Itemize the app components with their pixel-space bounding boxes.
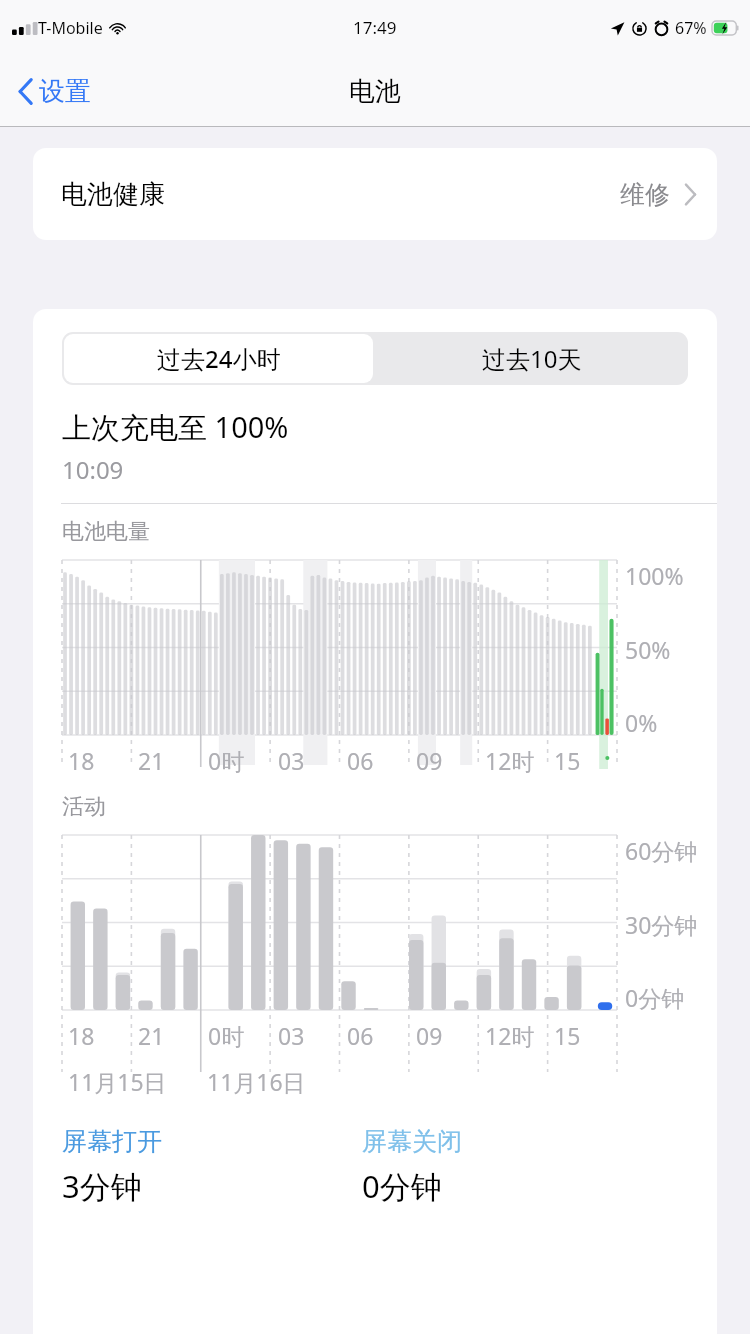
- button[interactable]: 电池健康: [33, 148, 717, 240]
- staticText: 0时: [208, 745, 245, 776]
- button[interactable]: 设置: [12, 69, 97, 114]
- staticText: 21: [138, 745, 165, 776]
- staticText: 0时: [208, 1020, 245, 1051]
- staticText: T-Mobile: [38, 17, 103, 39]
- staticText: 电池健康: [61, 178, 165, 211]
- button[interactable]: 过去24小时: [64, 334, 373, 383]
- staticText: 屏幕打开: [62, 1126, 162, 1157]
- staticText: 60分钟: [625, 835, 698, 863]
- staticText: 21: [138, 1020, 165, 1051]
- staticText: 3分钟: [62, 1165, 142, 1207]
- staticText: 活动: [62, 793, 106, 821]
- staticText: 上次充电至 100%: [62, 407, 289, 447]
- staticText: 0分钟: [625, 982, 685, 1010]
- staticText: 03: [278, 745, 305, 776]
- staticText: 18: [68, 745, 95, 776]
- staticText: 12时: [485, 1020, 535, 1051]
- staticText: 11月15日: [68, 1066, 167, 1096]
- staticText: 15: [554, 1020, 581, 1051]
- staticText: 过去24小时: [157, 342, 281, 375]
- staticText: 30分钟: [625, 909, 698, 937]
- staticText: 10:09: [62, 453, 124, 486]
- staticText: 电池电量: [62, 518, 150, 546]
- staticText: 100%: [625, 560, 684, 588]
- staticText: 12时: [485, 745, 535, 776]
- staticText: 67%: [675, 17, 707, 39]
- staticText: 17:49: [353, 16, 397, 39]
- staticText: 0分钟: [362, 1165, 442, 1207]
- staticText: 18: [68, 1020, 95, 1051]
- staticText: 11月16日: [207, 1066, 306, 1096]
- staticText: 06: [347, 745, 374, 776]
- staticText: 09: [416, 745, 443, 776]
- staticText: 设置: [39, 75, 91, 108]
- staticText: 0%: [625, 707, 658, 735]
- staticText: 03: [278, 1020, 305, 1051]
- staticText: 15: [554, 745, 581, 776]
- staticText: 屏幕关闭: [362, 1126, 462, 1157]
- staticText: 06: [347, 1020, 374, 1051]
- staticText: 过去10天: [482, 342, 582, 375]
- staticText: 维修: [620, 179, 670, 210]
- staticText: 50%: [625, 634, 671, 662]
- staticText: 电池: [349, 75, 401, 108]
- button[interactable]: 过去10天: [375, 332, 688, 385]
- staticText: 09: [416, 1020, 443, 1051]
